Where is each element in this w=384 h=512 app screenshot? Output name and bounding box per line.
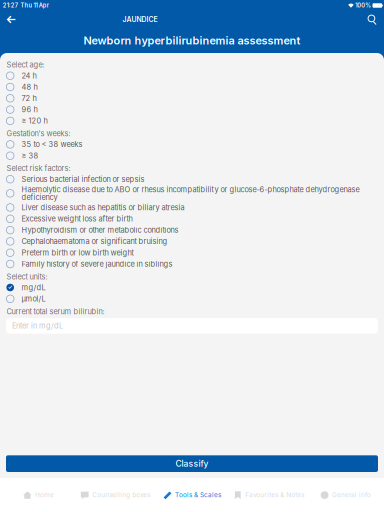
button[interactable]: Serious bacterial infection or sepsis [0, 174, 384, 185]
staticText: Select units: [6, 272, 47, 281]
button[interactable]: Liver disease such as hepatitis or bilia… [0, 202, 384, 213]
staticText: 21:27 [3, 2, 18, 9]
button[interactable]: Enter in mg/dL [0, 317, 384, 334]
staticText: 24 h [21, 71, 36, 80]
button[interactable]: Tools & Scales [154, 478, 230, 512]
staticText: Preterm birth or low birth weight [21, 248, 133, 257]
staticText: 72 h [21, 94, 36, 103]
staticText: µmol/L [21, 294, 45, 303]
staticText: Serious bacterial infection or sepsis [21, 175, 144, 184]
staticText: deficiency [21, 193, 57, 202]
staticText: 48 h [21, 82, 37, 91]
staticText: Tools & Scales [175, 491, 221, 499]
button[interactable]: Preterm birth or low birth weight [0, 247, 384, 258]
staticText: Liver disease such as hepatitis or bilia… [21, 203, 184, 212]
button[interactable]: Cephalohaematoma or significant bruising [0, 236, 384, 247]
staticText: Haemolytic disease due to ABO or rhesus … [21, 185, 359, 194]
button[interactable]: ≥ 120 h [0, 115, 384, 126]
button[interactable]: Home [0, 478, 77, 512]
button[interactable]: 96 h [0, 104, 384, 115]
button[interactable]: 24 h [0, 70, 384, 81]
button[interactable]: Excessive weight loss after birth [0, 213, 384, 224]
button[interactable]: µmol/L [0, 293, 384, 304]
staticText: Newborn hyperbilirubinemia assessment [83, 34, 300, 47]
staticText: Hypothyroidism or other metabolic condit… [21, 226, 178, 235]
staticText: 100% [355, 2, 371, 9]
button[interactable]: 72 h [0, 93, 384, 104]
staticText: Thu [20, 2, 32, 9]
staticText: Favourites & Notes [245, 491, 304, 499]
button[interactable]: Hypothyroidism or other metabolic condit… [0, 224, 384, 236]
button[interactable]: Favourites & Notes [230, 478, 307, 512]
staticText: ≥ 120 h [21, 116, 47, 125]
staticText: 11 [34, 2, 38, 9]
staticText: Home [35, 491, 54, 499]
staticText: 35 to < 38 weeks [21, 140, 82, 149]
staticText: Current total serum bilirubin: [6, 307, 104, 316]
staticText: Classify [175, 458, 208, 469]
staticText: Enter in mg/dL [12, 321, 63, 330]
button[interactable]: mg/dL [0, 282, 384, 293]
staticText: General info [332, 491, 371, 499]
button[interactable]: 48 h [0, 81, 384, 93]
button[interactable]: 35 to < 38 weeks [0, 139, 384, 150]
staticText: Counselling boxes [92, 491, 150, 499]
button[interactable]: General info [307, 478, 384, 512]
staticText: Family history of severe jaundice in sib… [21, 259, 172, 268]
staticText: Select risk factors: [6, 164, 70, 173]
staticText: Apr [39, 2, 49, 9]
button[interactable]: Haemolytic disease due to ABO or rhesus … [0, 185, 384, 202]
staticText: Cephalohaematoma or significant bruising [21, 237, 167, 246]
staticText: Excessive weight loss after birth [21, 214, 132, 223]
button[interactable]: Search [361, 11, 384, 28]
button[interactable]: Classify [0, 455, 384, 478]
staticText: mg/dL [21, 283, 45, 292]
button[interactable]: ≥ 38 [0, 150, 384, 161]
button[interactable]: Family history of severe jaundice in sib… [0, 258, 384, 270]
staticText: JAUNDICE [122, 15, 157, 24]
staticText: 96 h [21, 105, 37, 114]
staticText: Select age: [6, 60, 44, 69]
button[interactable]: Counselling boxes [77, 478, 154, 512]
staticText: Gestation's weeks: [6, 129, 70, 138]
button[interactable]: Back [0, 11, 22, 28]
staticText: ≥ 38 [21, 151, 38, 160]
